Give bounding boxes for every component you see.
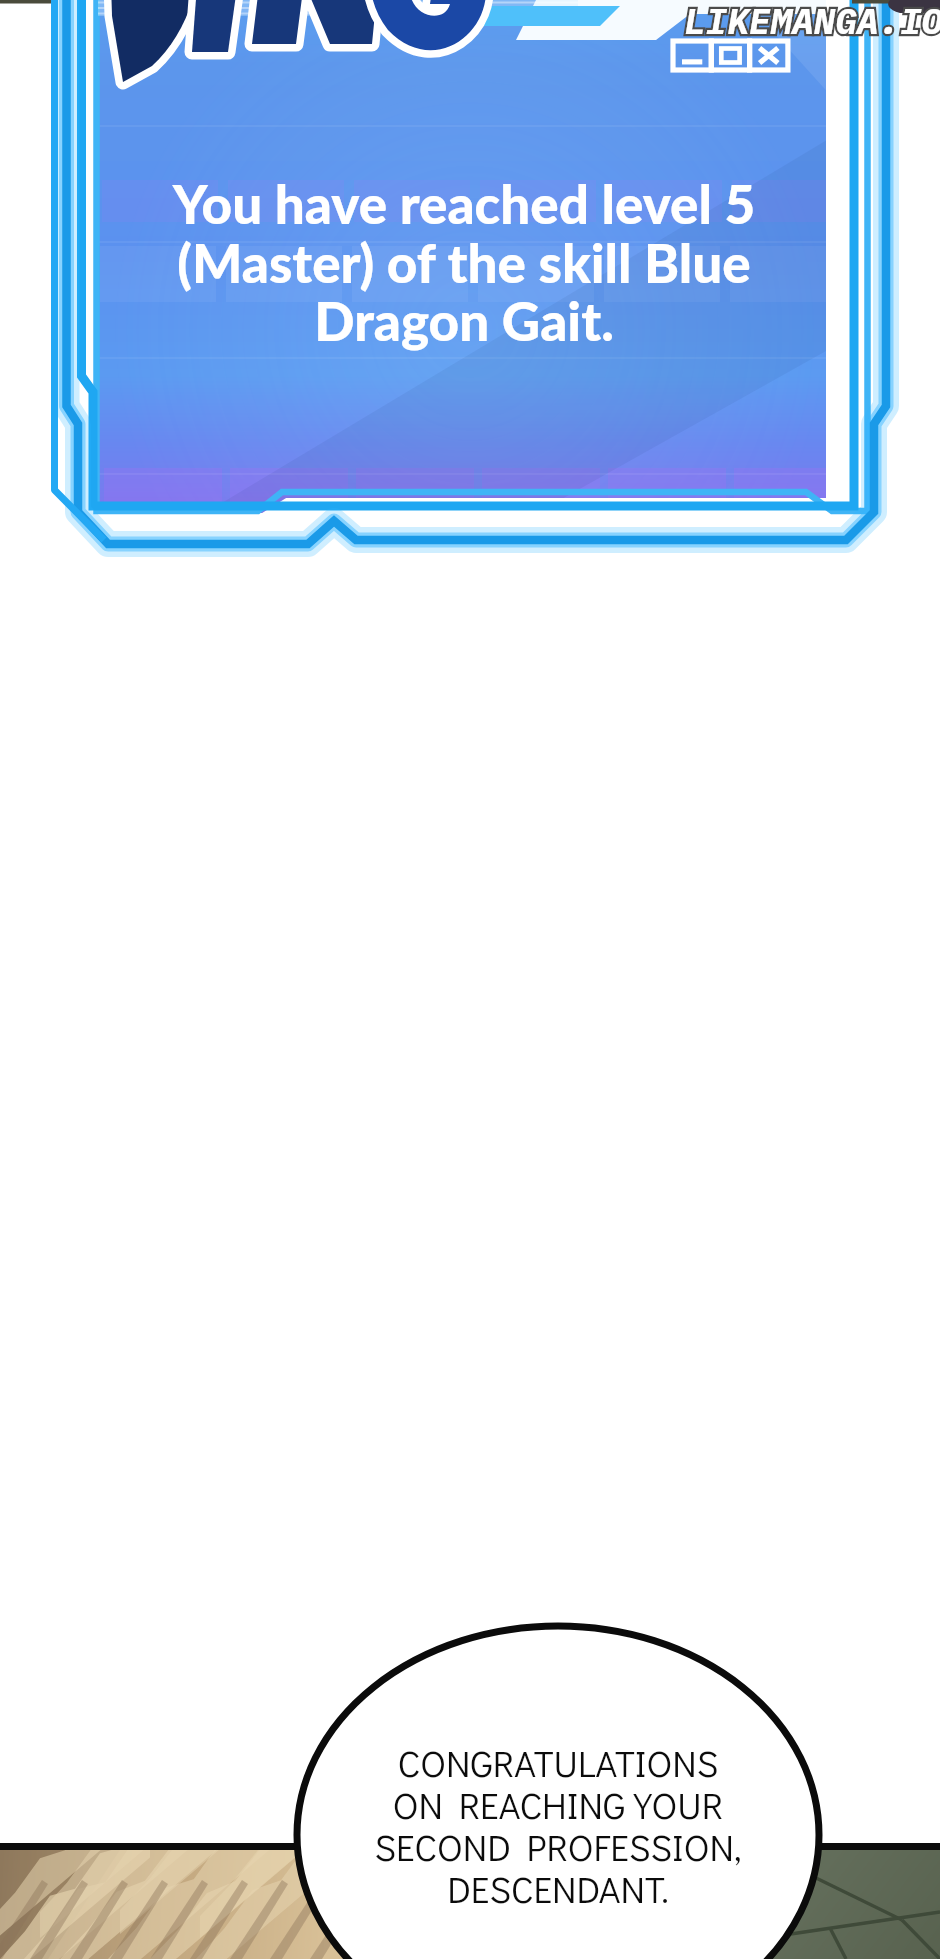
staticText: LIKEMANGA.IO xyxy=(684,0,940,44)
button[interactable]: Manga page xyxy=(0,0,940,1959)
staticText: LIKEMANGA.IO xyxy=(684,0,940,44)
staticText: You have reached level 5 (Master) of the… xyxy=(84,172,844,352)
staticText: CONGRATULATIONS ON REACHING YOUR SECOND … xyxy=(298,1738,818,1913)
